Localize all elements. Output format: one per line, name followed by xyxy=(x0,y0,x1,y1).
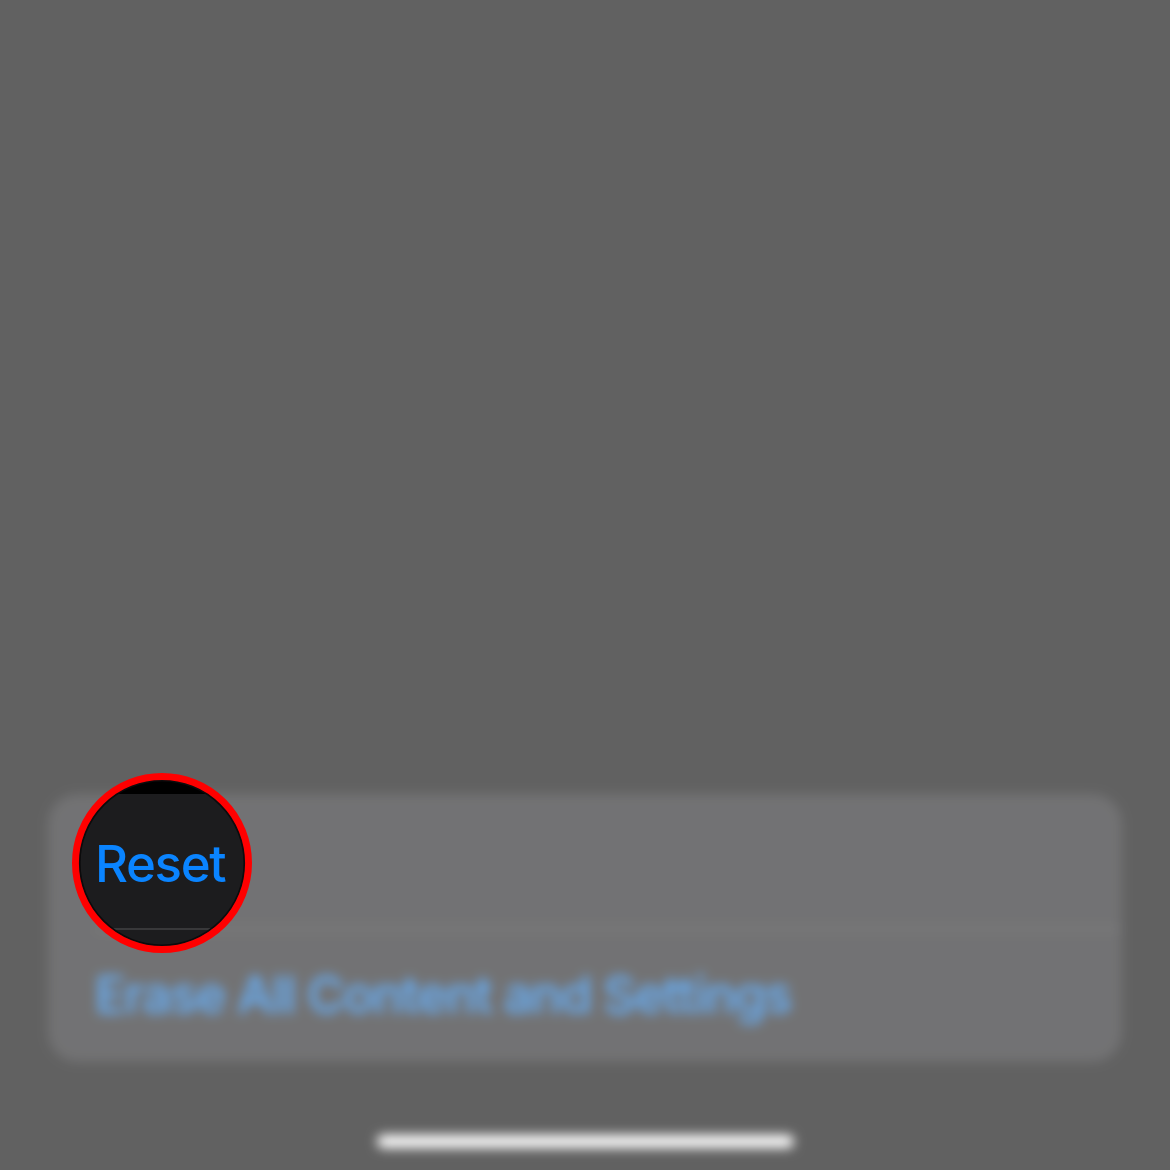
staticText: Reset xyxy=(95,833,226,895)
staticText: Reset xyxy=(95,833,226,895)
button[interactable]: Erase All Content and Settings xyxy=(48,928,1122,1062)
staticText: Erase All Content and Settings xyxy=(95,964,792,1026)
staticText: Erase All Content and Settings xyxy=(95,964,792,1026)
button[interactable]: Reset xyxy=(48,794,1122,928)
button[interactable]: Reset highlight xyxy=(72,773,252,953)
